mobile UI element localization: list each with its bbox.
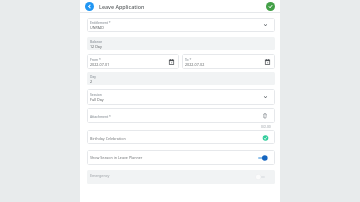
staticText: Show Season in Leave Planner	[90, 155, 258, 160]
staticText: Entitlement *	[90, 20, 111, 24]
staticText: 0/2.00	[261, 124, 271, 128]
button[interactable]: Day	[87, 72, 275, 85]
staticText: To *	[185, 57, 192, 61]
button[interactable]: Back	[85, 2, 94, 11]
staticText: 2	[90, 79, 93, 84]
staticText: Leave Application	[99, 3, 145, 10]
staticText: Day	[90, 74, 96, 78]
button[interactable]: Session	[87, 89, 275, 105]
staticText: Balance	[90, 39, 103, 43]
staticText: Session	[90, 92, 102, 96]
staticText: UNPAID	[90, 25, 104, 30]
staticText: From *	[90, 57, 101, 61]
button[interactable]: From *	[87, 54, 179, 69]
staticText: Full Day	[90, 97, 104, 102]
staticText: Attachment *	[90, 114, 111, 118]
staticText: 2022-07-01	[90, 62, 110, 67]
staticText: Emergency	[90, 173, 110, 178]
staticText: 12 Day	[90, 44, 102, 49]
button[interactable]: Submit	[266, 2, 275, 11]
button[interactable]: Birthday Celebration	[87, 130, 275, 144]
button[interactable]: Show Season in Leave Planner	[87, 150, 275, 165]
button[interactable]: Attachment *	[87, 108, 275, 123]
staticText: Birthday Celebration	[90, 136, 263, 141]
button[interactable]: Balance	[87, 37, 275, 50]
button[interactable]: Entitlement *	[87, 18, 275, 32]
button[interactable]: To *	[182, 54, 275, 69]
button[interactable]: Emergency	[87, 170, 275, 184]
staticText: 2022-07-02	[185, 62, 205, 67]
